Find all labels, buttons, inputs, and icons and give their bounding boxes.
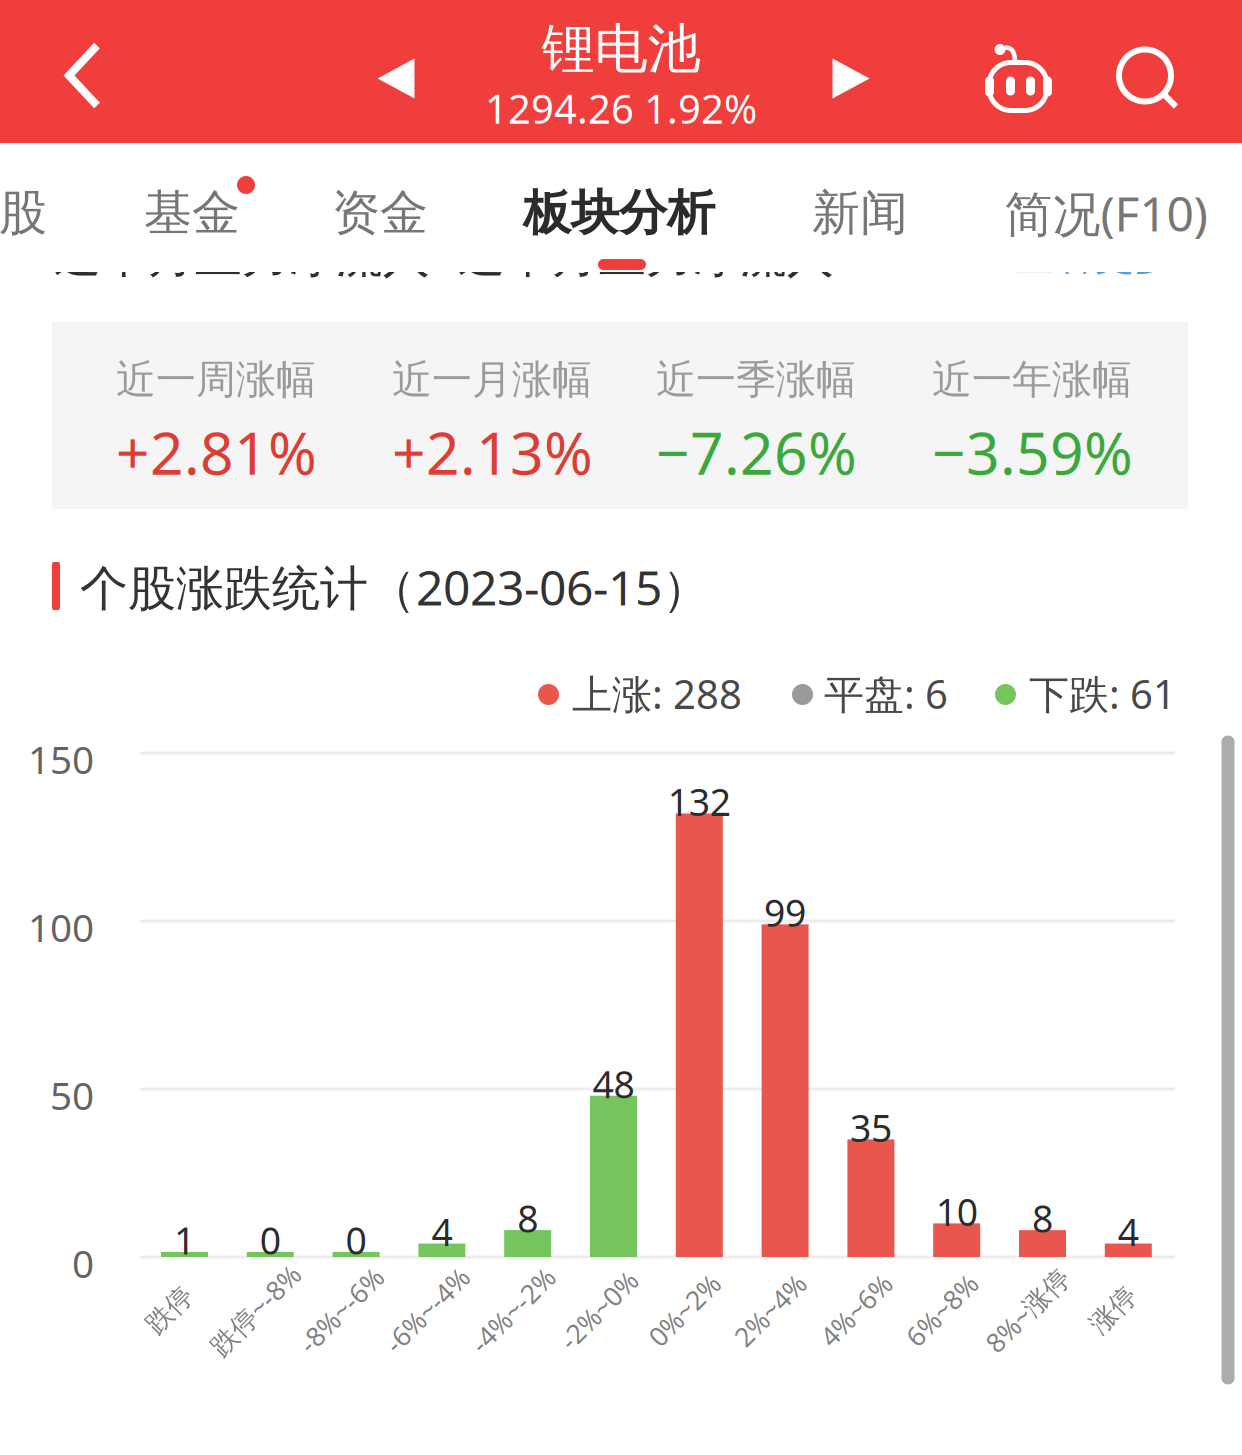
staticText: 近半月主力净流入 近半月主力净流入 [54,227,834,285]
staticText: 涨停 [1086,1294,1140,1326]
staticText: 35 [850,1103,892,1152]
staticText: 48 [592,1059,634,1108]
staticText: 8 [1032,1193,1053,1243]
button[interactable]: Assistant [954,7,1084,150]
staticText: 4 [431,1207,452,1256]
staticText: 10 [936,1187,978,1236]
staticText: +2.81% [116,413,317,491]
button[interactable]: Back [8,4,158,147]
staticText: 板块分析 [523,183,715,242]
staticText: 股 [0,183,47,242]
staticText: 0 [346,1215,367,1265]
staticText: 6%~8% [897,1292,986,1328]
staticText: 跌停 [142,1294,196,1326]
staticText: 个股涨跌统计（2023-06-15） [80,555,710,619]
staticText: 新闻 [812,183,908,242]
staticText: 0%~2% [640,1292,729,1328]
staticText: 99 [764,888,806,937]
staticText: 150 [28,733,94,785]
staticText: 上涨: 288 [572,667,742,720]
staticText: 4 [1118,1207,1139,1256]
staticText: 下跌: 61 [1029,667,1176,720]
staticText: -4%~-2% [459,1292,566,1328]
staticText: 近一周涨幅 [116,355,316,404]
staticText: 资金 [332,183,428,242]
staticText: 锂电池 [541,16,700,82]
button[interactable]: 近一年涨幅 [932,355,1147,485]
staticText: 8%~涨停 [974,1292,1080,1328]
button[interactable]: 板块分析 [474,158,764,268]
staticText: 132 [668,777,731,826]
staticText: 0 [260,1215,281,1265]
staticText: +2.13% [392,413,593,491]
button[interactable]: 简况(F10) [960,158,1242,268]
staticText: 近一年涨幅 [932,355,1132,404]
staticText: 查看更多 [1014,231,1174,280]
button[interactable]: 近一周涨幅 [116,355,331,485]
button[interactable]: 近一季涨幅 [656,355,871,485]
button[interactable]: Next sector [796,7,906,150]
staticText: 近一月涨幅 [392,355,592,404]
button[interactable]: 股 [0,158,47,268]
button[interactable]: Search [1083,7,1213,150]
button[interactable]: 近一月涨幅 [392,355,607,485]
staticText: 100 [28,901,94,953]
staticText: 平盘: 6 [824,667,948,720]
staticText: 2%~4% [726,1292,815,1328]
staticText: 1294.26 1.92% [485,82,757,135]
staticText: 近一季涨幅 [656,355,856,404]
staticText: 1 [174,1215,195,1265]
staticText: 50 [50,1069,94,1121]
staticText: 基金 [144,183,240,242]
staticText: 简况(F10) [1004,181,1207,245]
staticText: -6%~-4% [373,1292,480,1328]
staticText: -8%~-6% [288,1292,395,1328]
staticText: 跌停~-8% [198,1292,313,1328]
staticText: -2%~0% [549,1292,647,1328]
button[interactable]: 基金 [97,158,287,268]
button[interactable]: 资金 [285,158,475,268]
staticText: 4%~6% [811,1292,900,1328]
button[interactable]: Previous sector [341,7,451,150]
staticText: −7.26% [656,413,857,491]
button[interactable]: 新闻 [765,158,955,268]
staticText: 8 [517,1193,538,1243]
staticText: 0 [72,1237,94,1289]
staticText: −3.59% [932,413,1133,491]
